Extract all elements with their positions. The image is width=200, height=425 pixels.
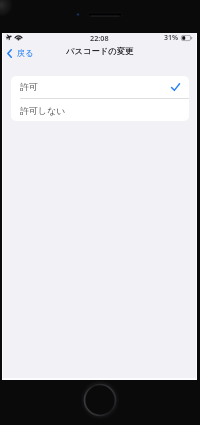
staticText: 31% [164,33,179,43]
button[interactable]: 許可しない [11,99,189,121]
button[interactable]: 戻る [3,46,39,60]
staticText: 戻る [17,48,34,58]
staticText: 許可 [20,81,38,92]
button[interactable]: 許可 [11,76,189,98]
other: Selected [171,83,180,91]
staticText: パスコードの変更 [66,46,134,56]
staticText: 22:08 [90,33,109,43]
staticText: 許可しない [20,105,66,116]
staticText: パスコードの変更 [66,46,134,56]
